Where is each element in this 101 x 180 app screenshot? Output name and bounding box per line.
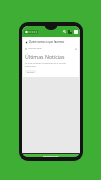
button[interactable]: Quem somos o que fazemos [25,39,77,45]
staticText: www.exemplo.com.br [43,155,59,157]
button[interactable]: Ver mais [25,70,36,73]
staticText: Ver mais [27,71,34,73]
button[interactable]: Home [24,30,38,34]
button[interactable]: Notifications [68,30,72,34]
button[interactable]: Search [63,30,66,33]
staticText: Quem somos o que fazemos [29,40,65,44]
staticText: Os mais recentes acontecimentos e notíci… [25,62,77,68]
staticText: Notícias Geral [28,47,42,50]
staticText: Últimas Notícias [25,53,65,60]
button[interactable]: Notícias Geral [25,47,77,50]
button[interactable]: Menu [74,30,78,34]
